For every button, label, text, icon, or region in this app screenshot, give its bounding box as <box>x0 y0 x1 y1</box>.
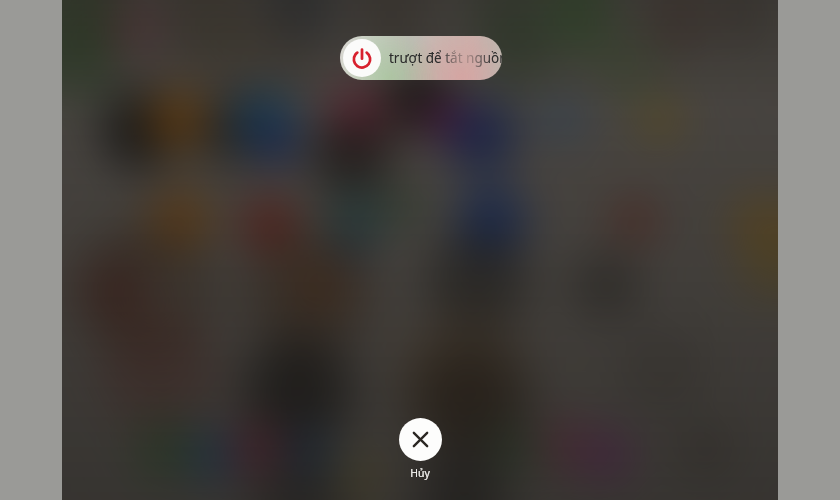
staticText: Hủy <box>373 466 467 480</box>
button[interactable]: Tắt nguồn <box>343 39 381 77</box>
staticText: trượt để tắt nguồn <box>389 49 502 67</box>
button[interactable]: Hủy <box>373 418 467 480</box>
button[interactable]: trượt để tắt nguồn <box>340 36 502 80</box>
